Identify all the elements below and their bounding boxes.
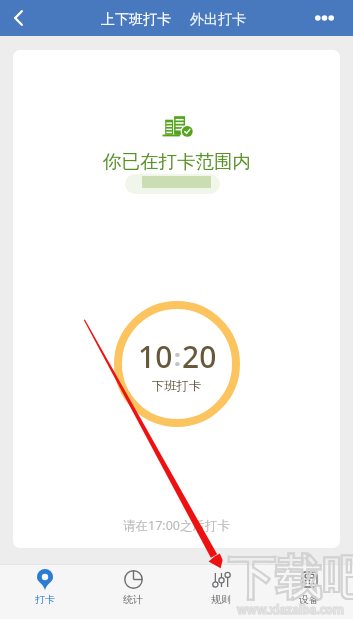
staticText: www.xiazaiba.com [237,602,344,618]
staticText: 下载吧 [228,549,353,608]
button[interactable]: 统计 [89,564,177,619]
staticText: 请在17:00之后打卡 [123,517,230,534]
button[interactable]: 规则 [177,564,265,619]
staticText: 外出打卡 [190,11,246,29]
staticText: : [174,340,181,373]
staticText: 10 [138,336,173,377]
staticText: 上下班打卡 [101,11,171,29]
staticText: 20 [182,336,217,377]
staticText: 打卡 [35,593,55,606]
staticText: 设备 [299,593,319,606]
button[interactable]: 打卡 [0,564,89,619]
button[interactable]: Back [0,0,36,36]
button[interactable]: More options [305,0,353,36]
button[interactable]: 10 [114,301,240,427]
staticText: 下班打卡 [152,378,202,393]
staticText: 规则 [211,593,231,606]
staticText: 你已在打卡范围内 [103,150,251,173]
button[interactable]: 设备 [265,564,353,619]
staticText: 统计 [123,593,143,606]
button[interactable]: 外出打卡 [186,11,250,29]
button[interactable]: 上下班打卡 [97,11,175,29]
